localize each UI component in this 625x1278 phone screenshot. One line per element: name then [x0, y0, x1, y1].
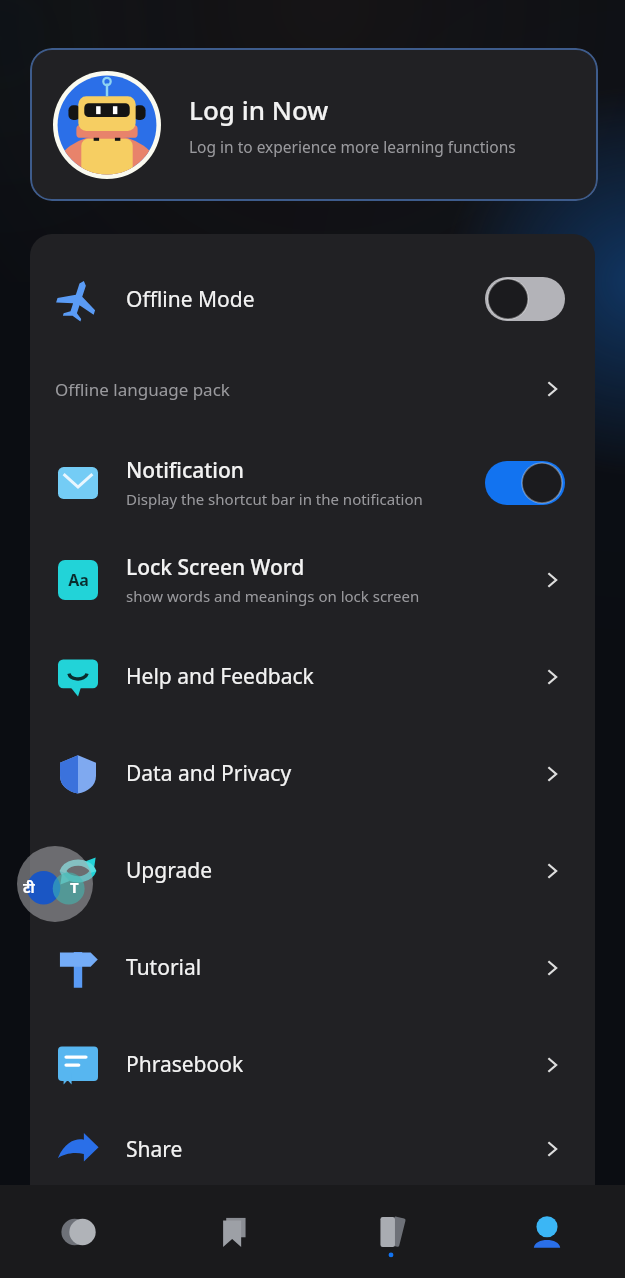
button[interactable]: Home — [0, 1185, 157, 1278]
staticText: Data and Privacy — [126, 759, 292, 788]
staticText: Notification — [126, 456, 245, 485]
staticText: Offline language pack — [55, 378, 230, 401]
button[interactable]: Phrasebook — [30, 1016, 595, 1113]
staticText: Help and Feedback — [126, 662, 314, 691]
staticText: show words and meanings on lock screen — [126, 586, 420, 606]
staticText: टी — [23, 878, 35, 897]
button[interactable]: Cards — [313, 1185, 469, 1278]
staticText: Offline Mode — [126, 285, 255, 314]
staticText: Aa — [68, 569, 89, 591]
staticText: Display the shortcut bar in the notifica… — [126, 489, 423, 509]
button[interactable]: Log in Now — [30, 48, 598, 201]
button[interactable]: Switch on — [485, 461, 565, 505]
staticText: T — [70, 877, 79, 897]
staticText: Phrasebook — [126, 1050, 244, 1079]
button[interactable]: Help and Feedback — [30, 628, 595, 725]
button[interactable]: Translate — [17, 846, 93, 922]
staticText: Share — [126, 1135, 183, 1164]
button[interactable]: Aa — [30, 531, 595, 628]
button[interactable]: Tutorial — [30, 919, 595, 1016]
button[interactable]: Data and Privacy — [30, 725, 595, 822]
button[interactable]: Notification — [30, 434, 595, 531]
button[interactable]: Switch off — [485, 277, 565, 321]
button[interactable]: Upgrade — [30, 822, 595, 919]
button[interactable]: Share — [30, 1113, 595, 1185]
button[interactable]: Offline language pack — [30, 344, 595, 434]
staticText: Log in to experience more learning funct… — [189, 136, 516, 157]
staticText: Tutorial — [126, 953, 202, 982]
button[interactable]: Profile — [469, 1185, 625, 1278]
staticText: Log in Now — [189, 92, 329, 127]
button[interactable]: Bookmarks — [157, 1185, 313, 1278]
staticText: Lock Screen Word — [126, 553, 305, 582]
staticText: Upgrade — [126, 856, 212, 885]
button[interactable]: Offline Mode — [30, 254, 595, 344]
